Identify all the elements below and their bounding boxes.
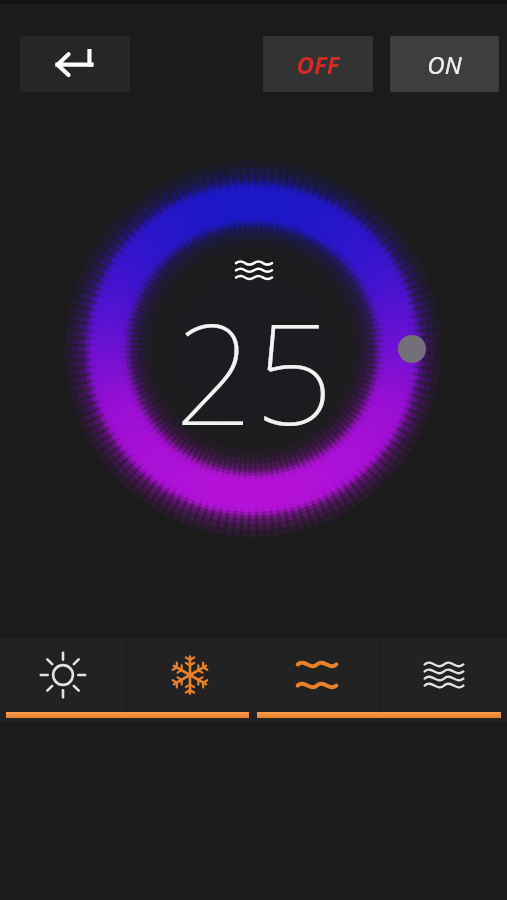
button[interactable]: Cool bbox=[127, 638, 253, 722]
button[interactable]: Heat bbox=[0, 638, 126, 722]
button[interactable]: Back bbox=[20, 36, 130, 92]
button[interactable]: OFF bbox=[263, 36, 373, 92]
staticText: OFF bbox=[296, 48, 340, 81]
staticText: ON bbox=[427, 48, 462, 81]
button[interactable]: ON bbox=[390, 36, 499, 92]
button[interactable]: Fan low bbox=[254, 638, 380, 722]
button[interactable] bbox=[0, 70, 507, 630]
button[interactable]: Fan high bbox=[381, 638, 507, 722]
staticText: 25 bbox=[174, 275, 334, 466]
